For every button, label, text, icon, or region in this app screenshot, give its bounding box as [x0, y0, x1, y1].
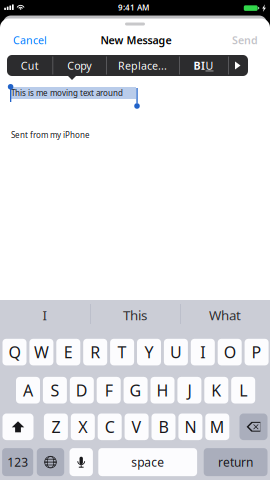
staticText: space [131, 454, 164, 470]
staticText: U [205, 58, 213, 73]
button[interactable]: S [43, 377, 67, 403]
button[interactable]: V [125, 413, 149, 440]
button[interactable]: I [0, 302, 90, 328]
staticText: 9:41 AM [118, 2, 149, 13]
button[interactable]: T [110, 339, 134, 365]
staticText: Replace... [118, 58, 167, 73]
button[interactable]: J [177, 377, 201, 403]
staticText: N [184, 416, 196, 437]
staticText: Send [232, 33, 258, 47]
staticText: B [193, 58, 200, 73]
staticText: Sent from my iPhone [11, 130, 90, 140]
staticText: Cut [21, 58, 39, 73]
staticText: Z [51, 416, 60, 437]
staticText: S [50, 380, 59, 401]
button[interactable]: E [56, 339, 80, 365]
staticText: Y [144, 341, 153, 363]
button[interactable]: More actions [228, 55, 248, 76]
button[interactable]: O [218, 339, 242, 365]
staticText: 123 [7, 454, 28, 470]
button[interactable]: What [180, 302, 270, 328]
staticText: G [130, 380, 142, 401]
button[interactable]: C [98, 413, 122, 440]
button[interactable]: Format [179, 55, 228, 76]
staticText: M [210, 416, 225, 437]
staticText: This is me moving text around [11, 88, 123, 98]
staticText: return [218, 454, 253, 470]
button[interactable]: Cancel [7, 32, 53, 48]
button[interactable]: L [231, 377, 255, 403]
button[interactable]: This [90, 302, 180, 328]
staticText: Q [8, 341, 20, 363]
button[interactable]: Y [137, 339, 161, 365]
staticText: R [90, 341, 100, 363]
staticText: B [158, 416, 168, 437]
staticText: What [209, 306, 241, 324]
button[interactable]: Next keyboard [37, 448, 64, 476]
button[interactable]: 123 [2, 448, 33, 476]
button[interactable]: Dictate [69, 448, 93, 476]
staticText: I [201, 58, 205, 73]
button[interactable]: D [70, 377, 94, 403]
button[interactable]: H [150, 377, 174, 403]
staticText: This [123, 306, 147, 324]
button[interactable]: return [204, 448, 267, 476]
button[interactable]: P [245, 339, 269, 365]
button[interactable]: Q [2, 339, 26, 365]
staticText: F [105, 380, 113, 401]
button[interactable]: B [151, 413, 175, 440]
button[interactable]: X [71, 413, 95, 440]
button[interactable]: Shift [2, 413, 33, 440]
button[interactable]: Send [225, 32, 265, 48]
staticText: I [42, 306, 47, 324]
button[interactable]: Copy [52, 55, 106, 76]
staticText: O [224, 341, 236, 363]
staticText: W [34, 341, 49, 363]
staticText: X [78, 416, 87, 437]
staticText: L [239, 380, 247, 401]
staticText: V [132, 416, 142, 437]
staticText: C [105, 416, 115, 437]
button[interactable]: Delete [239, 413, 267, 440]
button[interactable]: F [97, 377, 121, 403]
staticText: P [252, 341, 262, 363]
button[interactable]: G [124, 377, 148, 403]
staticText: I [200, 341, 205, 363]
button[interactable]: Replace... [106, 55, 179, 76]
staticText: Cancel [13, 33, 47, 47]
staticText: U [170, 341, 182, 363]
staticText: H [156, 380, 168, 401]
button[interactable]: M [205, 413, 229, 440]
button[interactable]: space [98, 448, 197, 476]
staticText: Copy [67, 58, 91, 73]
button[interactable]: U [164, 339, 188, 365]
button[interactable]: W [29, 339, 53, 365]
button[interactable]: Cut [7, 55, 52, 76]
button[interactable]: Z [44, 413, 68, 440]
staticText: J [187, 380, 191, 401]
button[interactable]: N [178, 413, 202, 440]
button[interactable]: R [83, 339, 107, 365]
button[interactable]: I [191, 339, 215, 365]
staticText: E [64, 341, 73, 363]
staticText: D [76, 380, 88, 401]
staticText: T [118, 341, 127, 363]
button[interactable]: K [204, 377, 228, 403]
staticText: A [23, 380, 33, 401]
button[interactable]: A [16, 377, 40, 403]
staticText: New Message [100, 33, 171, 47]
staticText: K [211, 380, 221, 401]
